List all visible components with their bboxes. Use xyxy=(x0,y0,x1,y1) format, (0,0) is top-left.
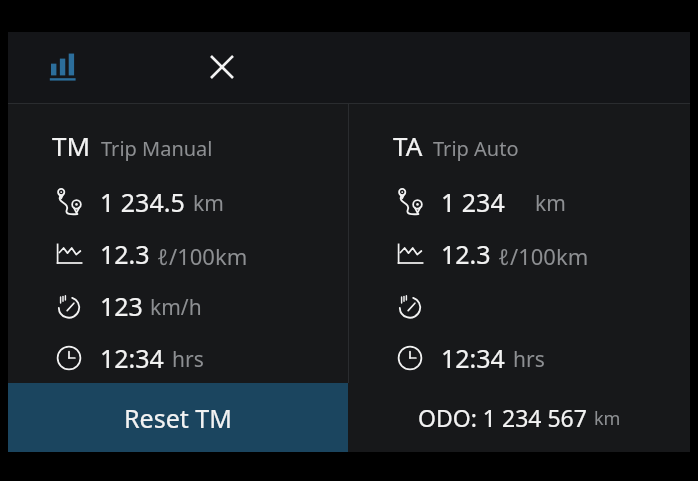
staticText: hrs xyxy=(172,345,204,374)
staticText: 12:34 xyxy=(100,341,164,375)
staticText: 12.3 xyxy=(441,237,491,271)
staticText: hrs xyxy=(513,345,545,374)
staticText: /100km xyxy=(510,241,589,271)
button[interactable]: Reset TM xyxy=(8,383,348,452)
staticText: /100km xyxy=(169,241,248,271)
button[interactable]: Trip statistics xyxy=(40,44,86,90)
staticText: km xyxy=(594,406,621,431)
staticText: TA xyxy=(393,128,423,163)
staticText: 1 234.5 xyxy=(100,185,185,219)
staticText: 123 xyxy=(100,289,143,323)
staticText: 12:34 xyxy=(441,341,505,375)
staticText: ODO: 1 234 567 xyxy=(418,402,587,433)
staticText: ℓ xyxy=(498,241,510,271)
staticText: Trip Auto xyxy=(433,135,519,162)
staticText: ℓ xyxy=(157,241,169,271)
staticText: km xyxy=(535,189,566,218)
staticText: 1 234 xyxy=(441,185,505,219)
staticText: 12.3 xyxy=(100,237,150,271)
button[interactable]: Close xyxy=(194,44,250,90)
staticText: Trip Manual xyxy=(101,135,213,162)
staticText: km/h xyxy=(150,293,202,322)
staticText: Reset TM xyxy=(124,401,232,435)
staticText: TM xyxy=(52,128,91,163)
staticText: km xyxy=(193,189,224,218)
